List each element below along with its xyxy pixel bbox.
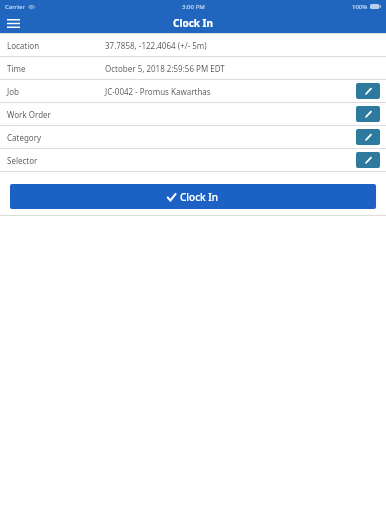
button[interactable]: Location: [0, 34, 386, 56]
staticText: 3:00 PM: [182, 3, 205, 11]
staticText: Clock In: [180, 190, 219, 204]
button[interactable]: Edit Category: [356, 129, 380, 145]
button[interactable]: Edit Work Order: [356, 106, 380, 122]
staticText: Selector: [7, 155, 105, 166]
staticText: Work Order: [7, 109, 105, 120]
staticText: Carrier: [5, 3, 25, 11]
staticText: JC-0042 - Promus Kawarthas: [105, 86, 356, 97]
button[interactable]: Selector: [0, 149, 386, 171]
button[interactable]: Clock In: [10, 184, 376, 209]
button[interactable]: Edit Selector: [356, 152, 380, 168]
button[interactable]: Menu: [3, 13, 23, 33]
button[interactable]: Job: [0, 80, 386, 102]
staticText: Category: [7, 132, 105, 143]
staticText: Job: [7, 86, 105, 97]
staticText: 100%: [352, 3, 368, 11]
button[interactable]: Edit Job: [356, 83, 380, 99]
staticText: Time: [7, 63, 105, 74]
button[interactable]: Time: [0, 57, 386, 79]
staticText: 37.7858, -122.4064 (+/- 5m): [105, 40, 380, 51]
staticText: Clock In: [173, 16, 213, 30]
staticText: October 5, 2018 2:59:56 PM EDT: [105, 63, 380, 74]
button[interactable]: Category: [0, 126, 386, 148]
staticText: Location: [7, 40, 105, 51]
button[interactable]: Work Order: [0, 103, 386, 125]
